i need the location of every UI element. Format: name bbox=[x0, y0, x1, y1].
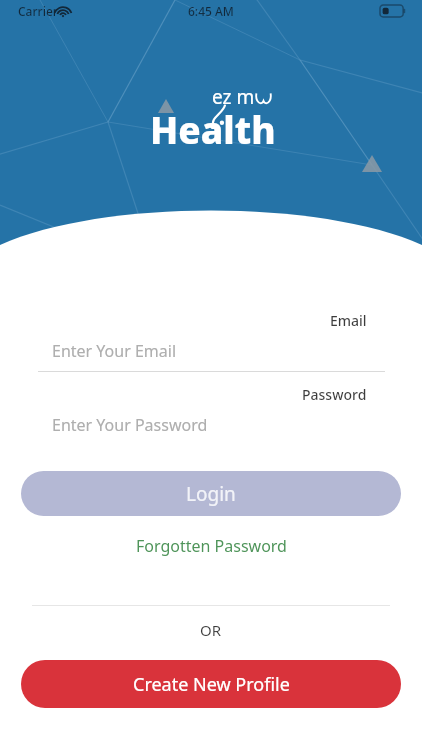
button[interactable]: Login bbox=[21, 471, 401, 516]
other: Wi-Fi signal bbox=[56, 6, 70, 17]
staticText: Forgotten Password bbox=[136, 535, 287, 557]
other: Battery level bbox=[380, 5, 406, 17]
staticText: Carrier bbox=[18, 3, 58, 19]
staticText: Enter Your Email bbox=[52, 340, 177, 362]
staticText: Create New Profile bbox=[133, 672, 290, 697]
button[interactable]: Enter Your Password bbox=[38, 412, 385, 446]
staticText: ez m bbox=[212, 84, 255, 110]
staticText: OR bbox=[200, 620, 222, 640]
button[interactable]: Enter Your Email bbox=[38, 338, 385, 372]
staticText: 6:45 AM bbox=[188, 3, 234, 19]
staticText: Health bbox=[150, 104, 276, 154]
staticText: Email bbox=[330, 311, 367, 330]
staticText: Password bbox=[302, 385, 367, 404]
button[interactable]: Forgotten Password bbox=[0, 531, 422, 561]
staticText: Login bbox=[186, 481, 236, 507]
button[interactable]: Create New Profile bbox=[21, 660, 401, 708]
staticText: Enter Your Password bbox=[52, 414, 208, 436]
